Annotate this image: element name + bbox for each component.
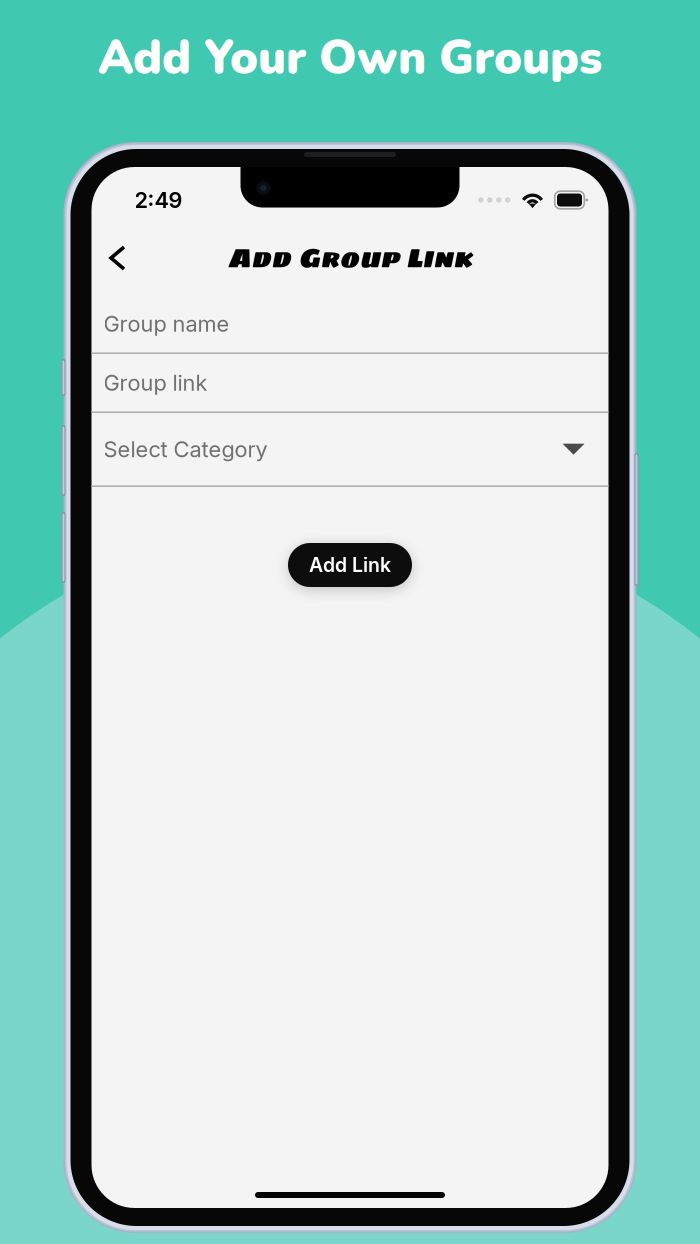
staticText: Add Your Own Groups: [98, 26, 602, 90]
staticText: Add Link: [309, 553, 391, 577]
button[interactable]: Group name: [91, 295, 608, 354]
staticText: Group link: [103, 369, 207, 396]
button[interactable]: Select Category: [91, 413, 608, 487]
button[interactable]: Back: [91, 235, 143, 281]
staticText: 2:49: [134, 187, 182, 213]
staticText: Select Category: [103, 436, 267, 462]
staticText: Group name: [103, 310, 229, 337]
button[interactable]: Group link: [91, 354, 608, 413]
staticText: Add Group Link: [227, 237, 473, 279]
button[interactable]: Add Link: [288, 543, 412, 587]
